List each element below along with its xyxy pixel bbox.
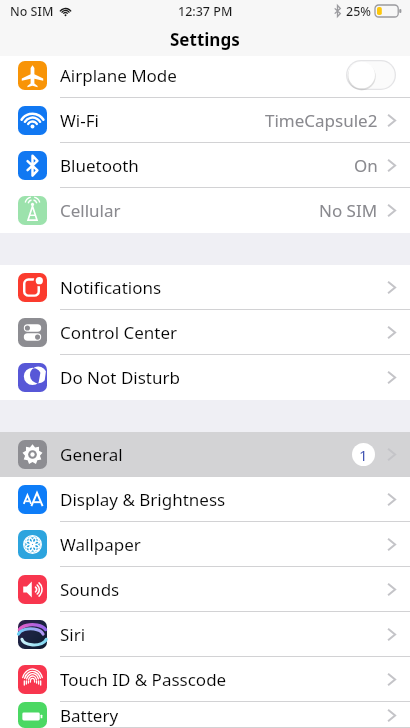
staticText: On xyxy=(354,154,378,177)
button[interactable]: Airplane Mode toggle xyxy=(346,60,396,90)
staticText: Settings xyxy=(170,28,240,51)
staticText: TimeCapsule2 xyxy=(265,109,378,132)
staticText: Touch ID & Passcode xyxy=(60,668,227,691)
staticText: 12:37 PM xyxy=(178,3,233,20)
staticText: Display & Brightness xyxy=(60,488,226,511)
staticText: Control Center xyxy=(60,321,178,344)
staticText: Do Not Disturb xyxy=(60,366,180,389)
button[interactable]: Do Not Disturb xyxy=(0,355,410,400)
button[interactable]: Wi-Fi xyxy=(0,98,410,143)
button[interactable]: Bluetooth xyxy=(0,143,410,188)
staticText: General xyxy=(60,443,123,466)
button[interactable]: General xyxy=(0,432,410,477)
button[interactable]: Airplane Mode xyxy=(0,54,410,96)
button[interactable]: Sounds xyxy=(0,567,410,612)
staticText: No SIM xyxy=(319,199,378,222)
staticText: Battery xyxy=(60,704,119,727)
staticText: Sounds xyxy=(60,578,120,601)
button[interactable]: Notifications xyxy=(0,265,410,310)
staticText: 1 xyxy=(359,445,368,465)
button[interactable]: Touch ID & Passcode xyxy=(0,657,410,702)
button[interactable]: Battery xyxy=(0,702,410,728)
staticText: Cellular xyxy=(60,199,121,222)
button[interactable]: Cellular xyxy=(0,188,410,233)
staticText: 25% xyxy=(346,3,371,20)
staticText: Airplane Mode xyxy=(60,64,177,87)
staticText: Bluetooth xyxy=(60,154,139,177)
staticText: Notifications xyxy=(60,276,162,299)
button[interactable]: Wallpaper xyxy=(0,522,410,567)
button[interactable]: Control Center xyxy=(0,310,410,355)
staticText: No SIM xyxy=(10,3,54,20)
button[interactable]: Display & Brightness xyxy=(0,477,410,522)
staticText: Siri xyxy=(60,623,86,646)
staticText: Wallpaper xyxy=(60,533,141,556)
staticText: Wi-Fi xyxy=(60,109,99,132)
button[interactable]: Siri xyxy=(0,612,410,657)
